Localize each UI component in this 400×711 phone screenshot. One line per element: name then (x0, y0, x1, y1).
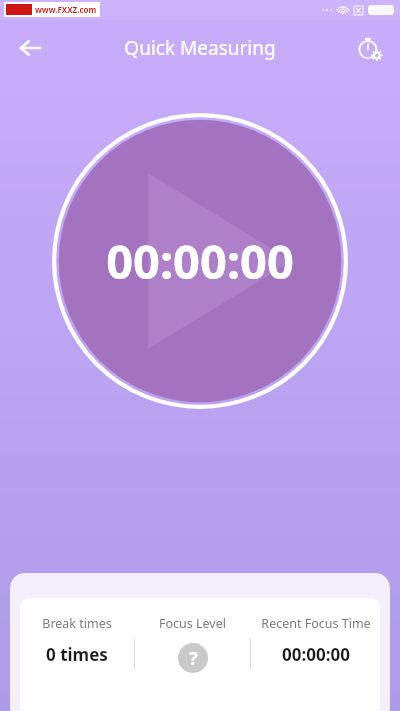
button[interactable]: Focus Level (135, 615, 250, 673)
staticText: www.FXXZ.com (35, 4, 97, 15)
button[interactable]: Measuring settings (348, 26, 392, 70)
button[interactable]: Start measuring (52, 113, 348, 409)
staticText: 00:00:00 (282, 643, 350, 666)
staticText: Break times (42, 615, 112, 632)
staticText: Focus Level (159, 615, 226, 632)
button[interactable]: Break times (20, 615, 134, 666)
staticText: ? (189, 646, 198, 671)
button[interactable]: Recent Focus Time (251, 615, 380, 666)
staticText: 00:00:00 (106, 229, 294, 293)
staticText: Quick Measuring (124, 35, 276, 61)
button[interactable]: Back (8, 26, 52, 70)
staticText: 0 times (46, 643, 108, 666)
button[interactable]: Focus level help (178, 643, 208, 673)
staticText: Recent Focus Time (261, 615, 371, 632)
